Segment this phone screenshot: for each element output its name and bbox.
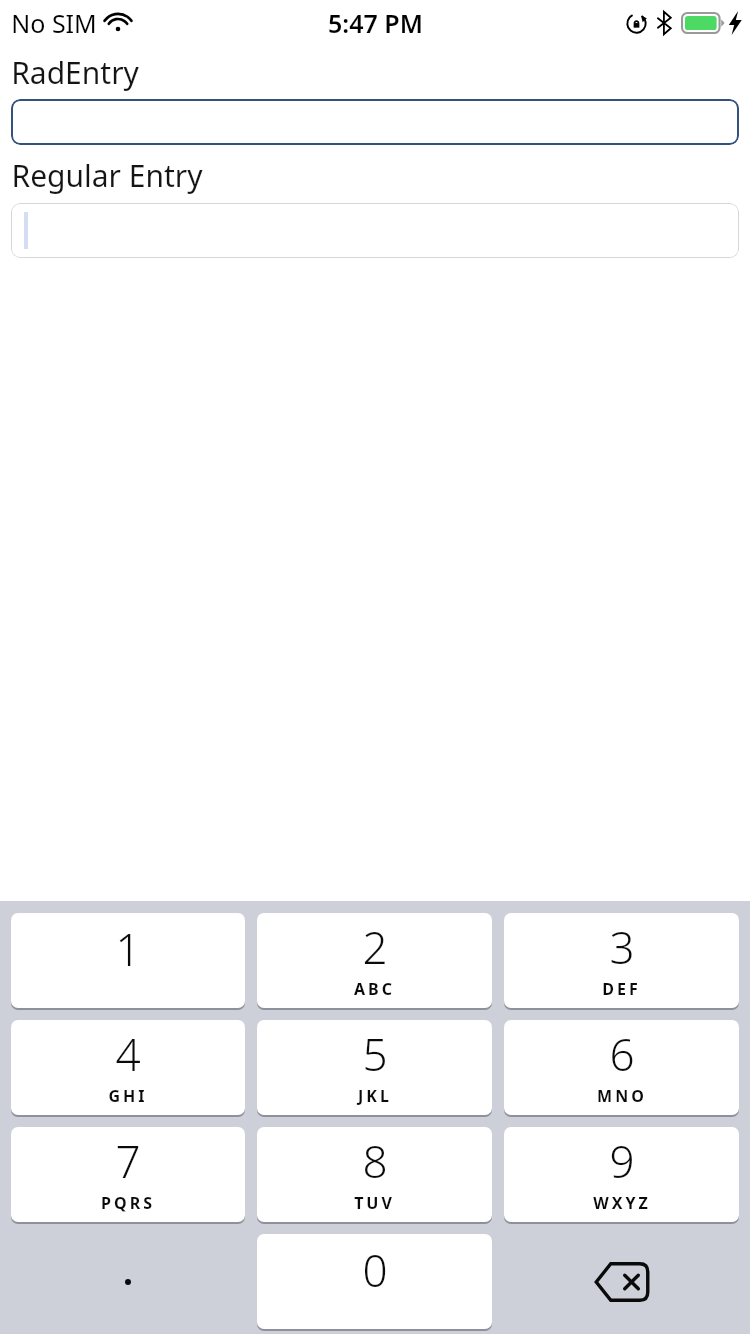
staticText: Regular Entry	[11, 155, 203, 196]
staticText: 3	[609, 917, 635, 977]
staticText: 9	[609, 1131, 635, 1191]
staticText: PQRS	[101, 1192, 155, 1214]
staticText: 5:47 PM	[328, 6, 423, 40]
staticText: WXYZ	[593, 1192, 651, 1214]
staticText: 8	[362, 1131, 388, 1191]
staticText: 1	[115, 919, 141, 979]
button[interactable]: 1	[11, 913, 245, 1008]
button[interactable]: Backspace	[504, 1234, 739, 1329]
button[interactable]	[11, 203, 739, 258]
button[interactable]: 2	[257, 913, 492, 1008]
button[interactable]: 6	[504, 1020, 739, 1115]
staticText: GHI	[108, 1085, 148, 1107]
button[interactable]	[11, 99, 739, 145]
button[interactable]: 9	[504, 1127, 739, 1222]
staticText: MNO	[597, 1085, 647, 1107]
staticText: No SIM	[11, 6, 97, 40]
button[interactable]: 3	[504, 913, 739, 1008]
button[interactable]	[11, 1234, 245, 1329]
staticText: 0	[362, 1240, 388, 1300]
staticText: ABC	[354, 978, 395, 1000]
staticText: JKL	[358, 1085, 392, 1107]
staticText: 7	[115, 1131, 141, 1191]
staticText: 4	[115, 1024, 141, 1084]
staticText: RadEntry	[11, 52, 139, 93]
staticText: TUV	[354, 1192, 395, 1214]
staticText: 5	[362, 1024, 388, 1084]
staticText: 2	[362, 917, 388, 977]
staticText: 6	[609, 1024, 635, 1084]
staticText: DEF	[602, 978, 641, 1000]
button[interactable]: 8	[257, 1127, 492, 1222]
button[interactable]: 4	[11, 1020, 245, 1115]
button[interactable]: 0	[257, 1234, 492, 1329]
button[interactable]: 5	[257, 1020, 492, 1115]
button[interactable]: 7	[11, 1127, 245, 1222]
